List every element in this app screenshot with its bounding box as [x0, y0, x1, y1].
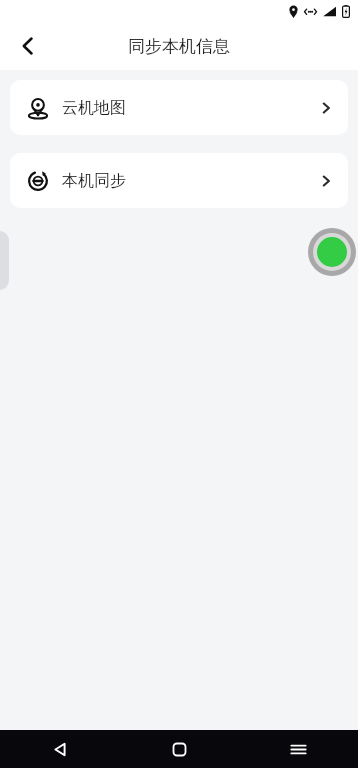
staticText: 本机同步 — [62, 171, 126, 191]
staticText: 同步本机信息 — [128, 36, 230, 57]
button[interactable]: Floating assistant — [308, 228, 356, 276]
button[interactable]: Back — [8, 26, 48, 66]
staticText: 云机地图 — [62, 98, 126, 118]
button[interactable]: 本机同步 — [10, 153, 348, 208]
button[interactable]: 云机地图 — [10, 80, 348, 135]
button[interactable]: Home — [120, 730, 239, 768]
button[interactable]: Back — [0, 730, 120, 768]
button[interactable]: Recent apps — [239, 730, 358, 768]
